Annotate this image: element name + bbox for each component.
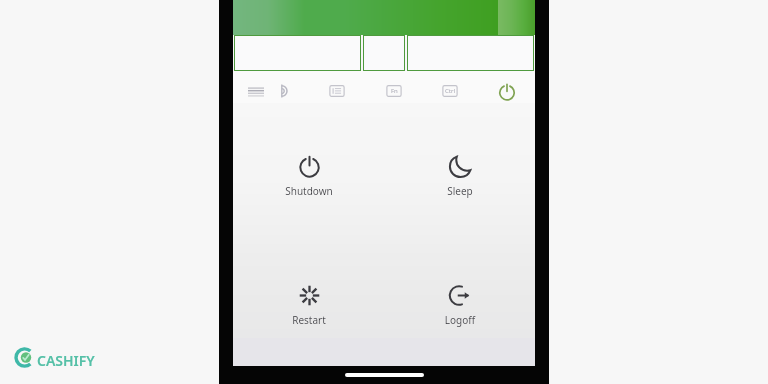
button[interactable]: Sleep [416,155,504,198]
staticText: Ctrl [445,87,455,95]
staticText: Fn [391,87,398,95]
button[interactable]: Brightness [270,78,296,104]
button[interactable]: Shutdown [265,155,353,198]
staticText: CASHIFY [37,351,95,370]
staticText: Restart [265,313,353,327]
button[interactable]: Ctrl key [437,78,463,104]
button[interactable]: Menu [243,79,269,105]
button[interactable]: Logoff [416,284,504,327]
button[interactable]: Restart [265,284,353,327]
staticText: Shutdown [265,184,353,198]
staticText: Logoff [416,313,504,327]
button[interactable]: Cashify [14,345,100,371]
button[interactable]: Keyboard [324,78,350,104]
staticText: Sleep [416,184,504,198]
button[interactable]: Fn key [381,78,407,104]
button[interactable]: Power [494,79,520,105]
